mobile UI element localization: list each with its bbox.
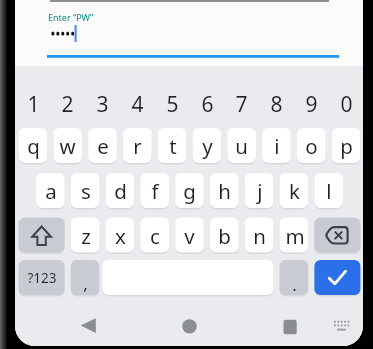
staticText: d — [114, 177, 127, 205]
staticText: g — [183, 177, 196, 205]
staticText: 6 — [201, 90, 214, 119]
staticText: s — [81, 177, 91, 205]
staticText: c — [150, 222, 160, 250]
staticText: t — [169, 132, 177, 160]
staticText: r — [133, 132, 142, 160]
staticText: 7 — [235, 90, 248, 119]
staticText: 2 — [61, 90, 74, 119]
staticText: j — [257, 177, 263, 205]
staticText: b — [218, 222, 231, 250]
staticText: Enter “PW” — [48, 11, 94, 23]
staticText: z — [81, 222, 91, 250]
staticText: m — [285, 222, 305, 250]
staticText: p — [340, 132, 353, 160]
staticText: y — [202, 132, 213, 160]
staticText: q — [27, 132, 40, 160]
staticText: , — [83, 272, 88, 295]
staticText: 1 — [27, 90, 40, 119]
staticText: 8 — [270, 90, 283, 119]
staticText: l — [326, 177, 332, 205]
staticText: ?123 — [27, 269, 57, 287]
staticText: 0 — [340, 90, 353, 119]
staticText: h — [218, 177, 231, 205]
staticText: 9 — [305, 90, 318, 119]
staticText: 4 — [131, 90, 144, 119]
staticText: u — [235, 132, 248, 160]
staticText: v — [184, 222, 195, 250]
staticText: k — [289, 177, 300, 205]
staticText: 3 — [96, 90, 109, 119]
staticText: w — [59, 132, 76, 160]
staticText: x — [115, 222, 126, 250]
staticText: o — [305, 132, 318, 160]
staticText: e — [97, 132, 109, 160]
staticText: i — [274, 132, 280, 160]
staticText: n — [253, 222, 266, 250]
staticText: f — [151, 177, 159, 205]
staticText: 5 — [166, 90, 179, 119]
staticText: . — [292, 273, 297, 296]
staticText: a — [45, 177, 57, 205]
